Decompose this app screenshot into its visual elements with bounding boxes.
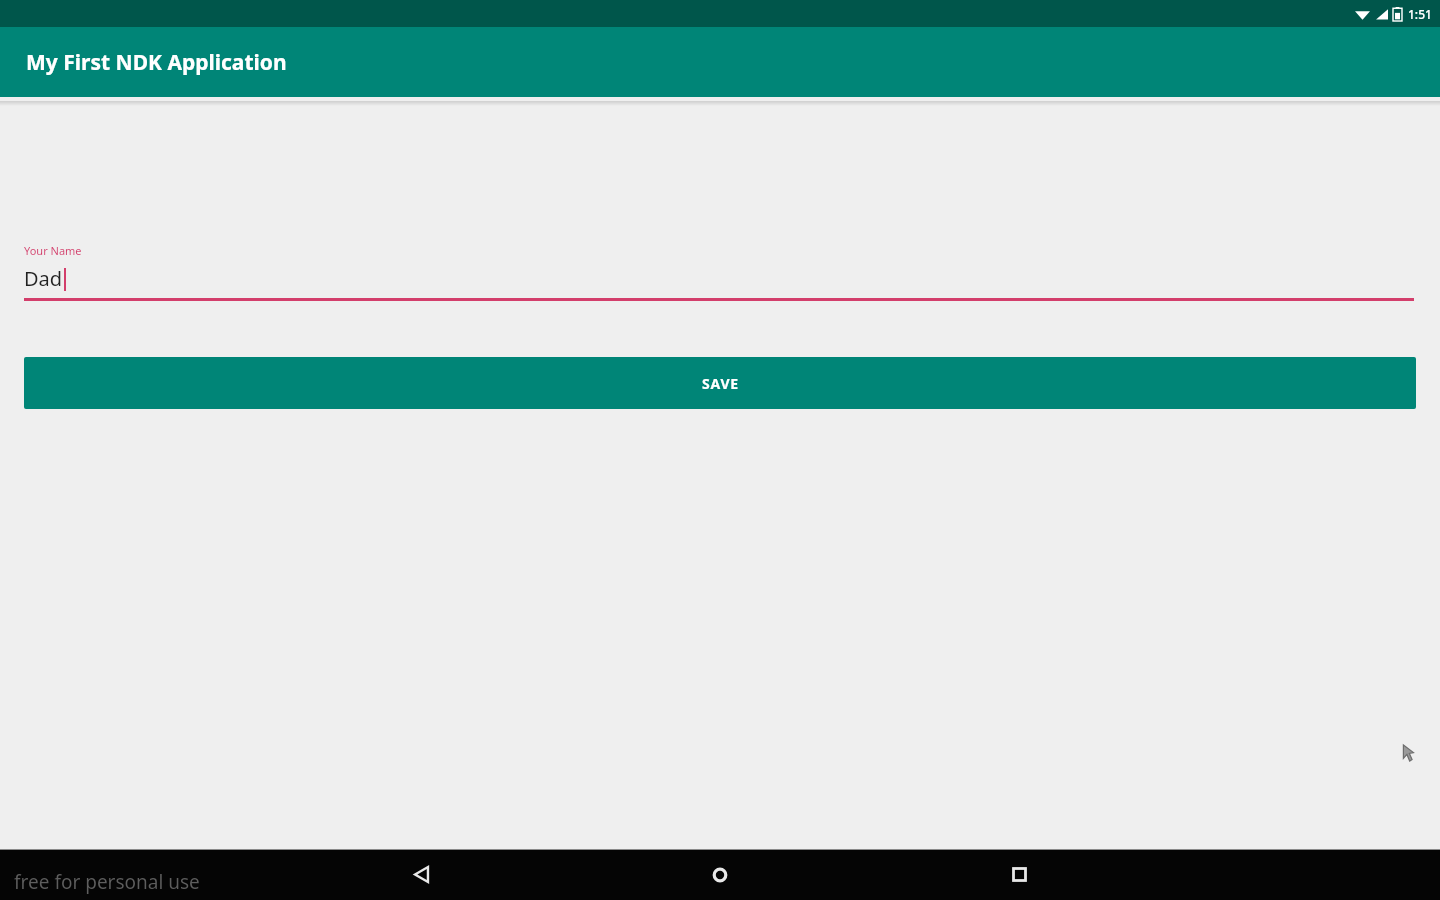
staticText: 1:51 — [1408, 6, 1432, 22]
button[interactable]: SAVE — [24, 357, 1416, 409]
button[interactable]: Your Name — [24, 243, 1414, 301]
button[interactable]: Recents — [991, 849, 1047, 900]
staticText: SAVE — [702, 374, 739, 393]
staticText: Dad — [24, 265, 63, 292]
button[interactable]: Back — [393, 849, 449, 900]
staticText: My First NDK Application — [26, 48, 287, 77]
button[interactable]: Home — [692, 849, 748, 900]
staticText: free for personal use — [14, 869, 200, 895]
staticText: Your Name — [24, 243, 82, 258]
